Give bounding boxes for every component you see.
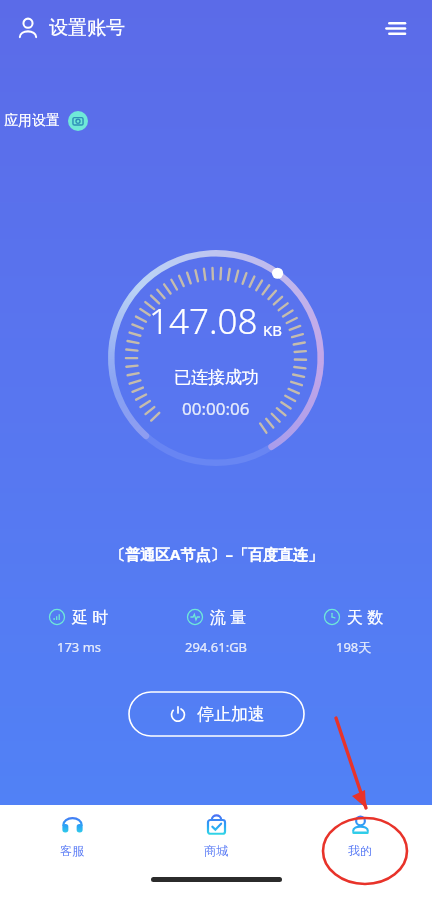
staticText: 应用设置 xyxy=(4,112,60,130)
staticText: 我的 xyxy=(348,843,372,858)
button[interactable]: 我的 xyxy=(288,805,432,867)
staticText: KB xyxy=(263,320,283,340)
staticText: 294.61:GB xyxy=(185,638,248,656)
button[interactable]: 停止加速 xyxy=(129,692,304,736)
button[interactable]: 流 量 xyxy=(148,606,285,656)
staticText: 〔普通区A节点〕–「百度直连」 xyxy=(110,544,323,564)
button[interactable]: 天 数 xyxy=(285,606,422,656)
button[interactable]: Menu xyxy=(376,8,416,48)
staticText: 00:00:06 xyxy=(182,397,250,420)
staticText: 商城 xyxy=(204,843,228,858)
staticText: 延 时 xyxy=(72,606,109,628)
staticText: 设置账号 xyxy=(49,16,125,40)
staticText: 客服 xyxy=(60,843,84,858)
button[interactable]: 设置账号 xyxy=(16,12,125,44)
staticText: 流 量 xyxy=(210,606,247,628)
button[interactable]: 延 时 xyxy=(10,606,148,656)
staticText: 147.08 xyxy=(149,297,258,345)
staticText: 已连接成功 xyxy=(174,367,259,388)
staticText: 198天 xyxy=(336,638,372,656)
button[interactable]: 商城 xyxy=(144,805,288,867)
button[interactable]: 应用设置 xyxy=(0,104,96,138)
staticText: 停止加速 xyxy=(197,704,265,725)
staticText: 天 数 xyxy=(347,606,384,628)
staticText: 173 ms xyxy=(57,638,102,656)
button[interactable]: 客服 xyxy=(0,805,144,867)
